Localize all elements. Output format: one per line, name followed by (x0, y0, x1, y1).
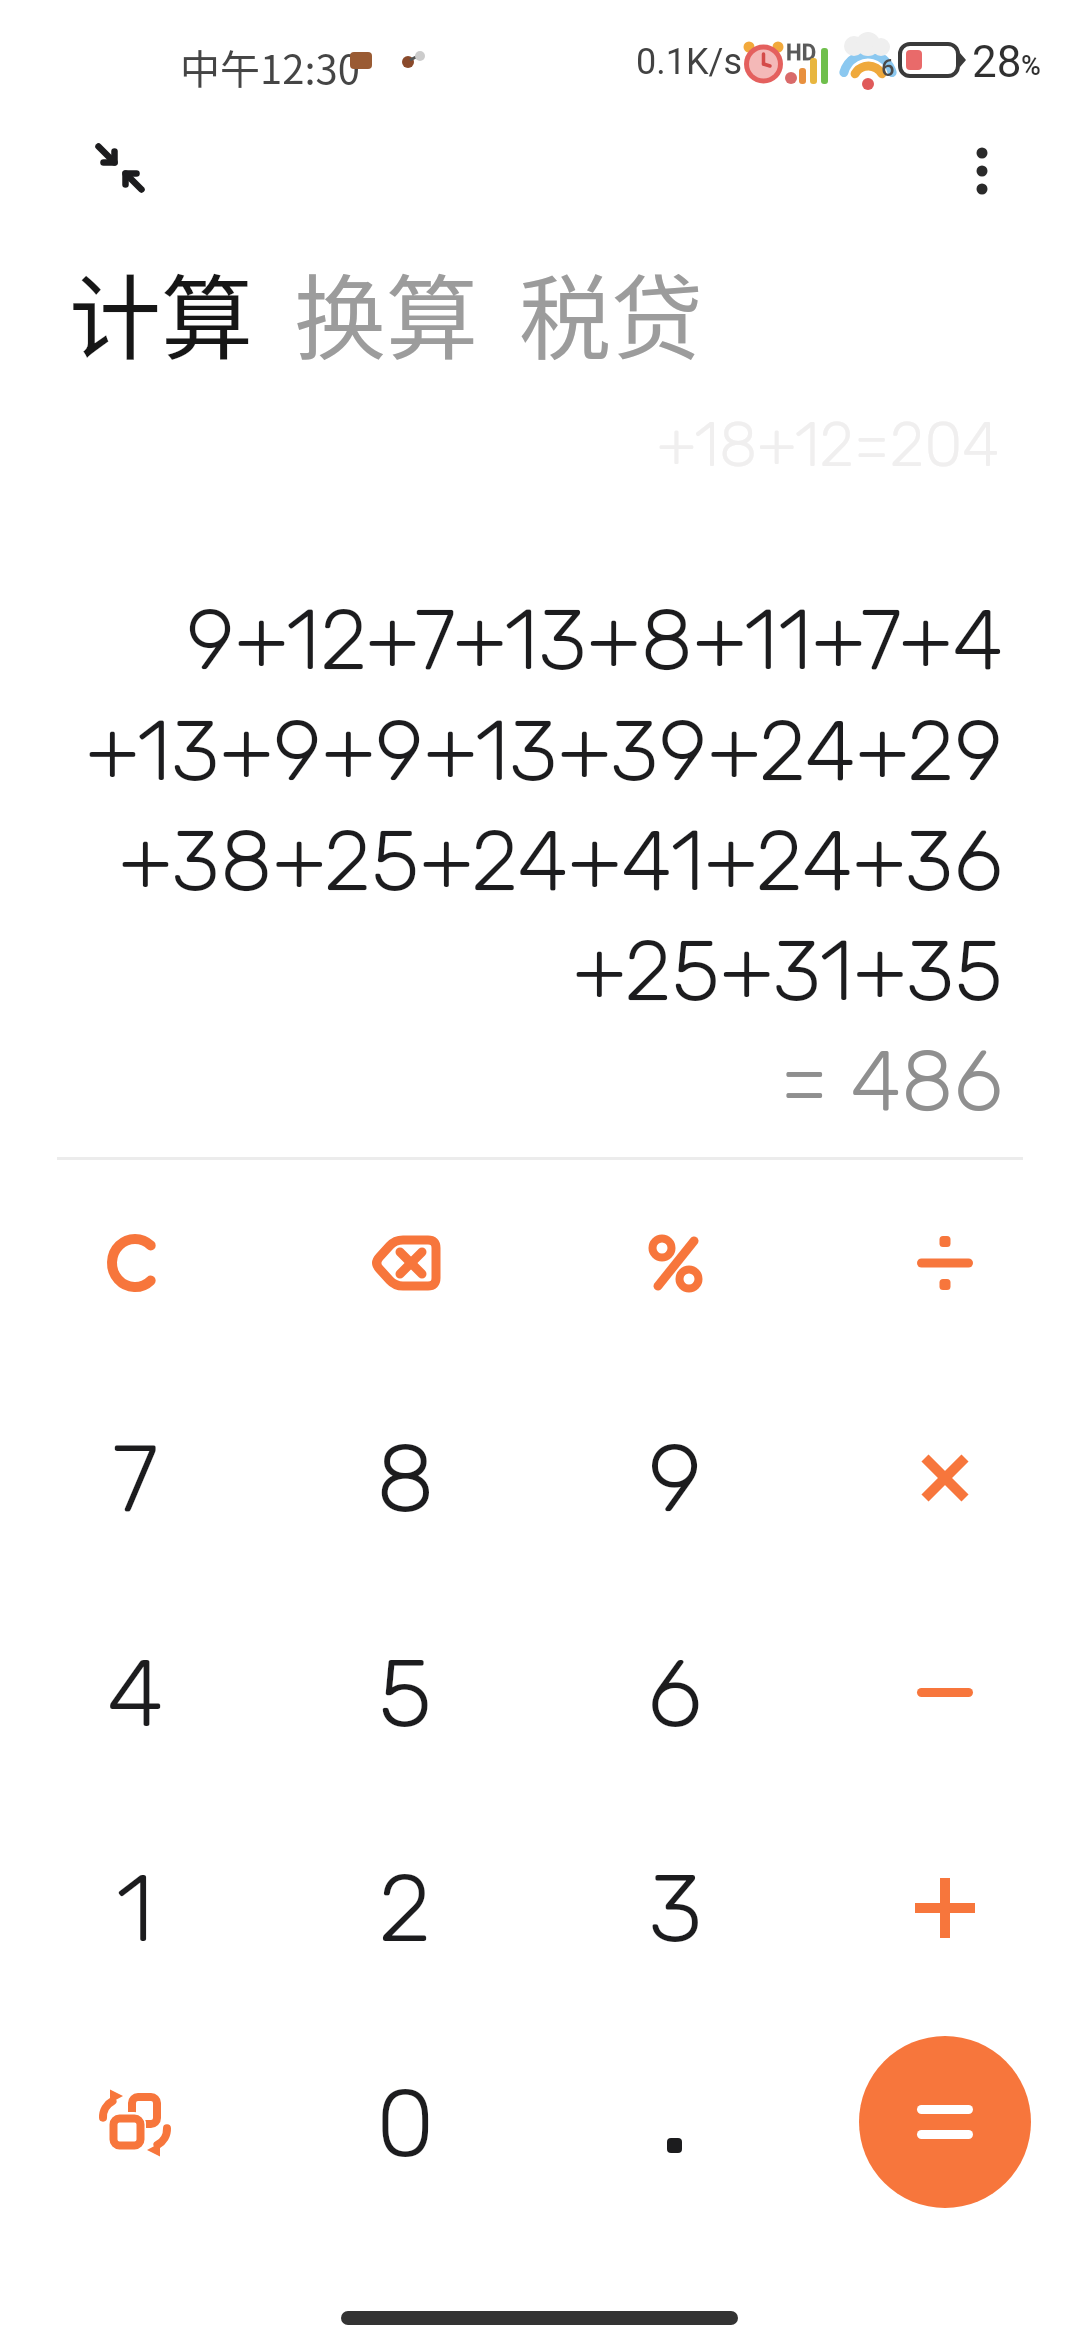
button[interactable] (580, 2028, 770, 2218)
staticText: % (1021, 50, 1041, 82)
button[interactable]: 换算 (294, 245, 479, 378)
button[interactable]: 1 (40, 1813, 230, 2003)
button[interactable] (850, 1598, 1040, 1788)
button[interactable]: 3 (580, 1813, 770, 2003)
button[interactable]: 9 (580, 1383, 770, 1573)
staticText: 2 (378, 1852, 432, 1965)
staticText: 9+12+7+13+8+11+7+4 +13+9+9+13+39+24+29 +… (85, 590, 1003, 1131)
button[interactable] (850, 1168, 1040, 1358)
staticText: 4 (107, 1637, 164, 1750)
staticText: 1 (116, 1852, 154, 1965)
button[interactable] (580, 1168, 770, 1358)
button[interactable] (310, 1168, 500, 1358)
staticText: 6 (881, 54, 895, 82)
staticText: 6 (647, 1637, 703, 1750)
button[interactable]: 5 (310, 1598, 500, 1788)
staticText: +18+12=204 (657, 408, 1000, 481)
button[interactable]: 2 (310, 1813, 500, 2003)
button[interactable] (850, 1383, 1040, 1573)
button[interactable] (40, 1168, 230, 1358)
button[interactable] (40, 2028, 230, 2218)
button[interactable] (80, 128, 160, 208)
button[interactable] (859, 2036, 1031, 2208)
staticText: 中午12:30 (180, 38, 360, 96)
staticText: 0.1K/s (636, 41, 742, 83)
button[interactable]: 0 (310, 2028, 500, 2218)
staticText: 0 (376, 2067, 435, 2180)
staticText: 9 (648, 1422, 703, 1535)
staticText: 28 (972, 36, 1022, 88)
button[interactable]: 6 (580, 1598, 770, 1788)
button[interactable]: 4 (40, 1598, 230, 1788)
button[interactable]: 计算 (69, 245, 254, 378)
button[interactable] (942, 130, 1022, 210)
staticText: 7 (112, 1422, 159, 1535)
button[interactable]: 税贷 (519, 245, 704, 378)
button[interactable]: 8 (310, 1383, 500, 1573)
button[interactable] (850, 1813, 1040, 2003)
staticText: HD (786, 40, 817, 66)
staticText: 3 (648, 1852, 703, 1965)
staticText: 5 (378, 1637, 433, 1750)
button[interactable]: 7 (40, 1383, 230, 1573)
staticText: 8 (376, 1422, 435, 1535)
